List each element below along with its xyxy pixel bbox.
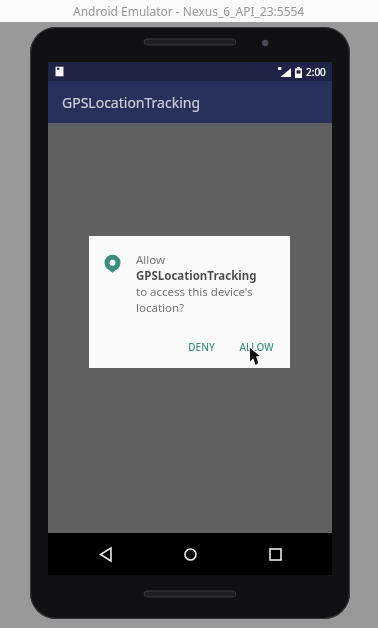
other: Location <box>103 254 122 273</box>
staticText: GPSLocationTracking <box>136 268 257 284</box>
button[interactable]: Back <box>77 533 133 575</box>
staticText: Android Emulator - Nexus_6_API_23:5554 <box>73 3 305 19</box>
staticText: GPSLocationTracking <box>62 93 201 112</box>
staticText: location? <box>136 300 185 316</box>
staticText: 2:00 <box>306 65 326 79</box>
button[interactable]: DENY <box>180 334 223 360</box>
staticText: ALLOW <box>239 340 274 354</box>
staticText: DENY <box>188 340 215 354</box>
staticText: Allow <box>136 252 166 268</box>
button[interactable]: Recent apps <box>247 533 303 575</box>
staticText: to access this device's <box>136 284 253 300</box>
button[interactable]: Home <box>162 533 218 575</box>
button[interactable]: ALLOW <box>231 334 282 360</box>
